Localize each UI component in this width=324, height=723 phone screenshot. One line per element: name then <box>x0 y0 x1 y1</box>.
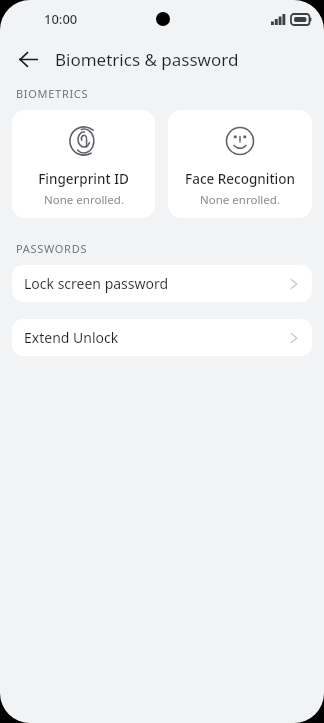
staticText: PASSWORDS <box>16 241 88 256</box>
button[interactable]: Fingerprint ID <box>12 110 155 218</box>
staticText: None enrolled. <box>200 192 280 208</box>
button[interactable]: Face Recognition <box>168 110 312 218</box>
staticText: Face Recognition <box>185 170 295 188</box>
staticText: Extend Unlock <box>24 328 290 347</box>
staticText: Biometrics & password <box>55 48 239 71</box>
staticText: None enrolled. <box>44 192 124 208</box>
staticText: Fingerprint ID <box>38 170 129 188</box>
button[interactable]: Back <box>10 41 46 77</box>
button[interactable]: Extend Unlock <box>12 319 312 356</box>
staticText: BIOMETRICS <box>16 86 89 101</box>
staticText: 10:00 <box>44 10 78 28</box>
staticText: Lock screen password <box>24 274 290 293</box>
button[interactable]: Lock screen password <box>12 265 312 302</box>
